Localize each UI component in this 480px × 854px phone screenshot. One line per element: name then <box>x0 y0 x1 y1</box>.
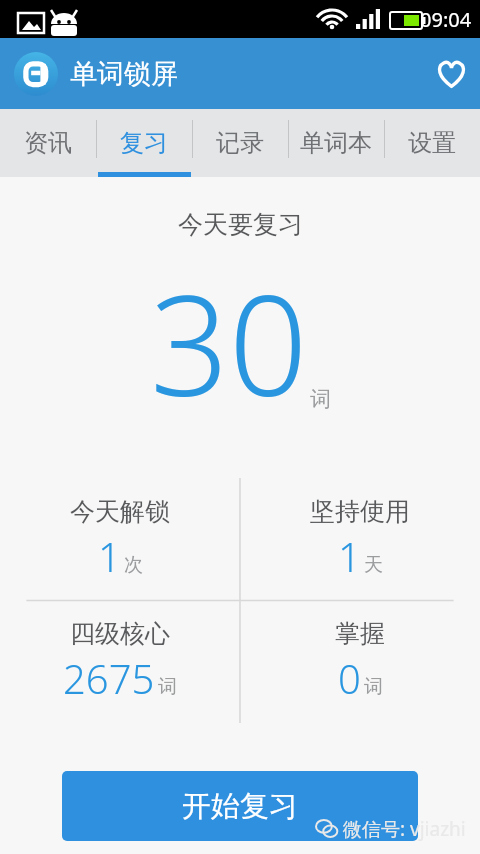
button[interactable]: Favorite <box>422 45 480 103</box>
staticText: 词 <box>310 386 331 412</box>
staticText: 单词本 <box>300 128 372 158</box>
staticText: 1 <box>98 529 121 583</box>
staticText: 记录 <box>216 128 264 158</box>
staticText: 词 <box>158 675 177 699</box>
staticText: 今天解锁 <box>70 496 170 527</box>
staticText: 单词锁屏 <box>70 57 178 91</box>
button[interactable]: 设置 <box>384 109 480 177</box>
staticText: 次 <box>124 553 143 577</box>
button[interactable]: 记录 <box>192 109 288 177</box>
staticText: 开始复习 <box>182 788 298 825</box>
staticText: 四级核心 <box>70 618 170 649</box>
button[interactable]: 开始复习 <box>62 771 418 841</box>
button[interactable]: 单词本 <box>288 109 384 177</box>
button[interactable]: 资讯 <box>0 109 96 177</box>
staticText: 设置 <box>408 128 456 158</box>
staticText: 1 <box>338 529 361 583</box>
staticText: 2675 <box>63 651 155 705</box>
staticText: 0 <box>338 651 361 705</box>
staticText: 今天要复习 <box>178 209 303 240</box>
staticText: 复习 <box>120 128 168 158</box>
button[interactable]: 复习 <box>96 109 192 177</box>
staticText: 掌握 <box>335 618 385 649</box>
staticText: 天 <box>364 553 383 577</box>
staticText: 微信号: vjiazhi <box>343 816 466 842</box>
staticText: 30 <box>150 248 308 436</box>
staticText: 词 <box>364 675 383 699</box>
staticText: 资讯 <box>24 128 72 158</box>
staticText: 坚持使用 <box>310 496 410 527</box>
staticText: 09:04 <box>420 6 472 33</box>
